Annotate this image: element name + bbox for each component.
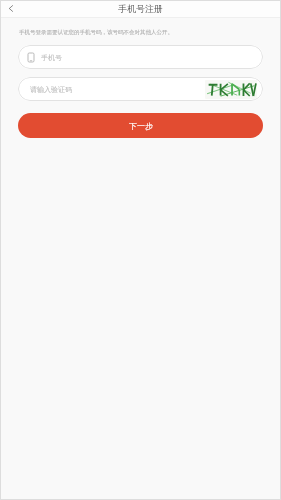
button[interactable]: Refresh captcha xyxy=(205,80,257,99)
staticText: 手机号注册 xyxy=(118,3,163,14)
staticText: 手机号登录需要认证您的手机号码，该号码不会对其他人公开。 xyxy=(19,29,173,36)
button[interactable]: 请输入验证码 xyxy=(18,77,263,101)
staticText: 下一步 xyxy=(129,121,153,131)
staticText: 请输入验证码 xyxy=(30,85,72,94)
staticText: 手机号 xyxy=(41,53,62,62)
button[interactable]: 手机号 xyxy=(18,45,263,69)
button[interactable]: 下一步 xyxy=(18,113,263,138)
button[interactable]: Back xyxy=(0,0,22,17)
